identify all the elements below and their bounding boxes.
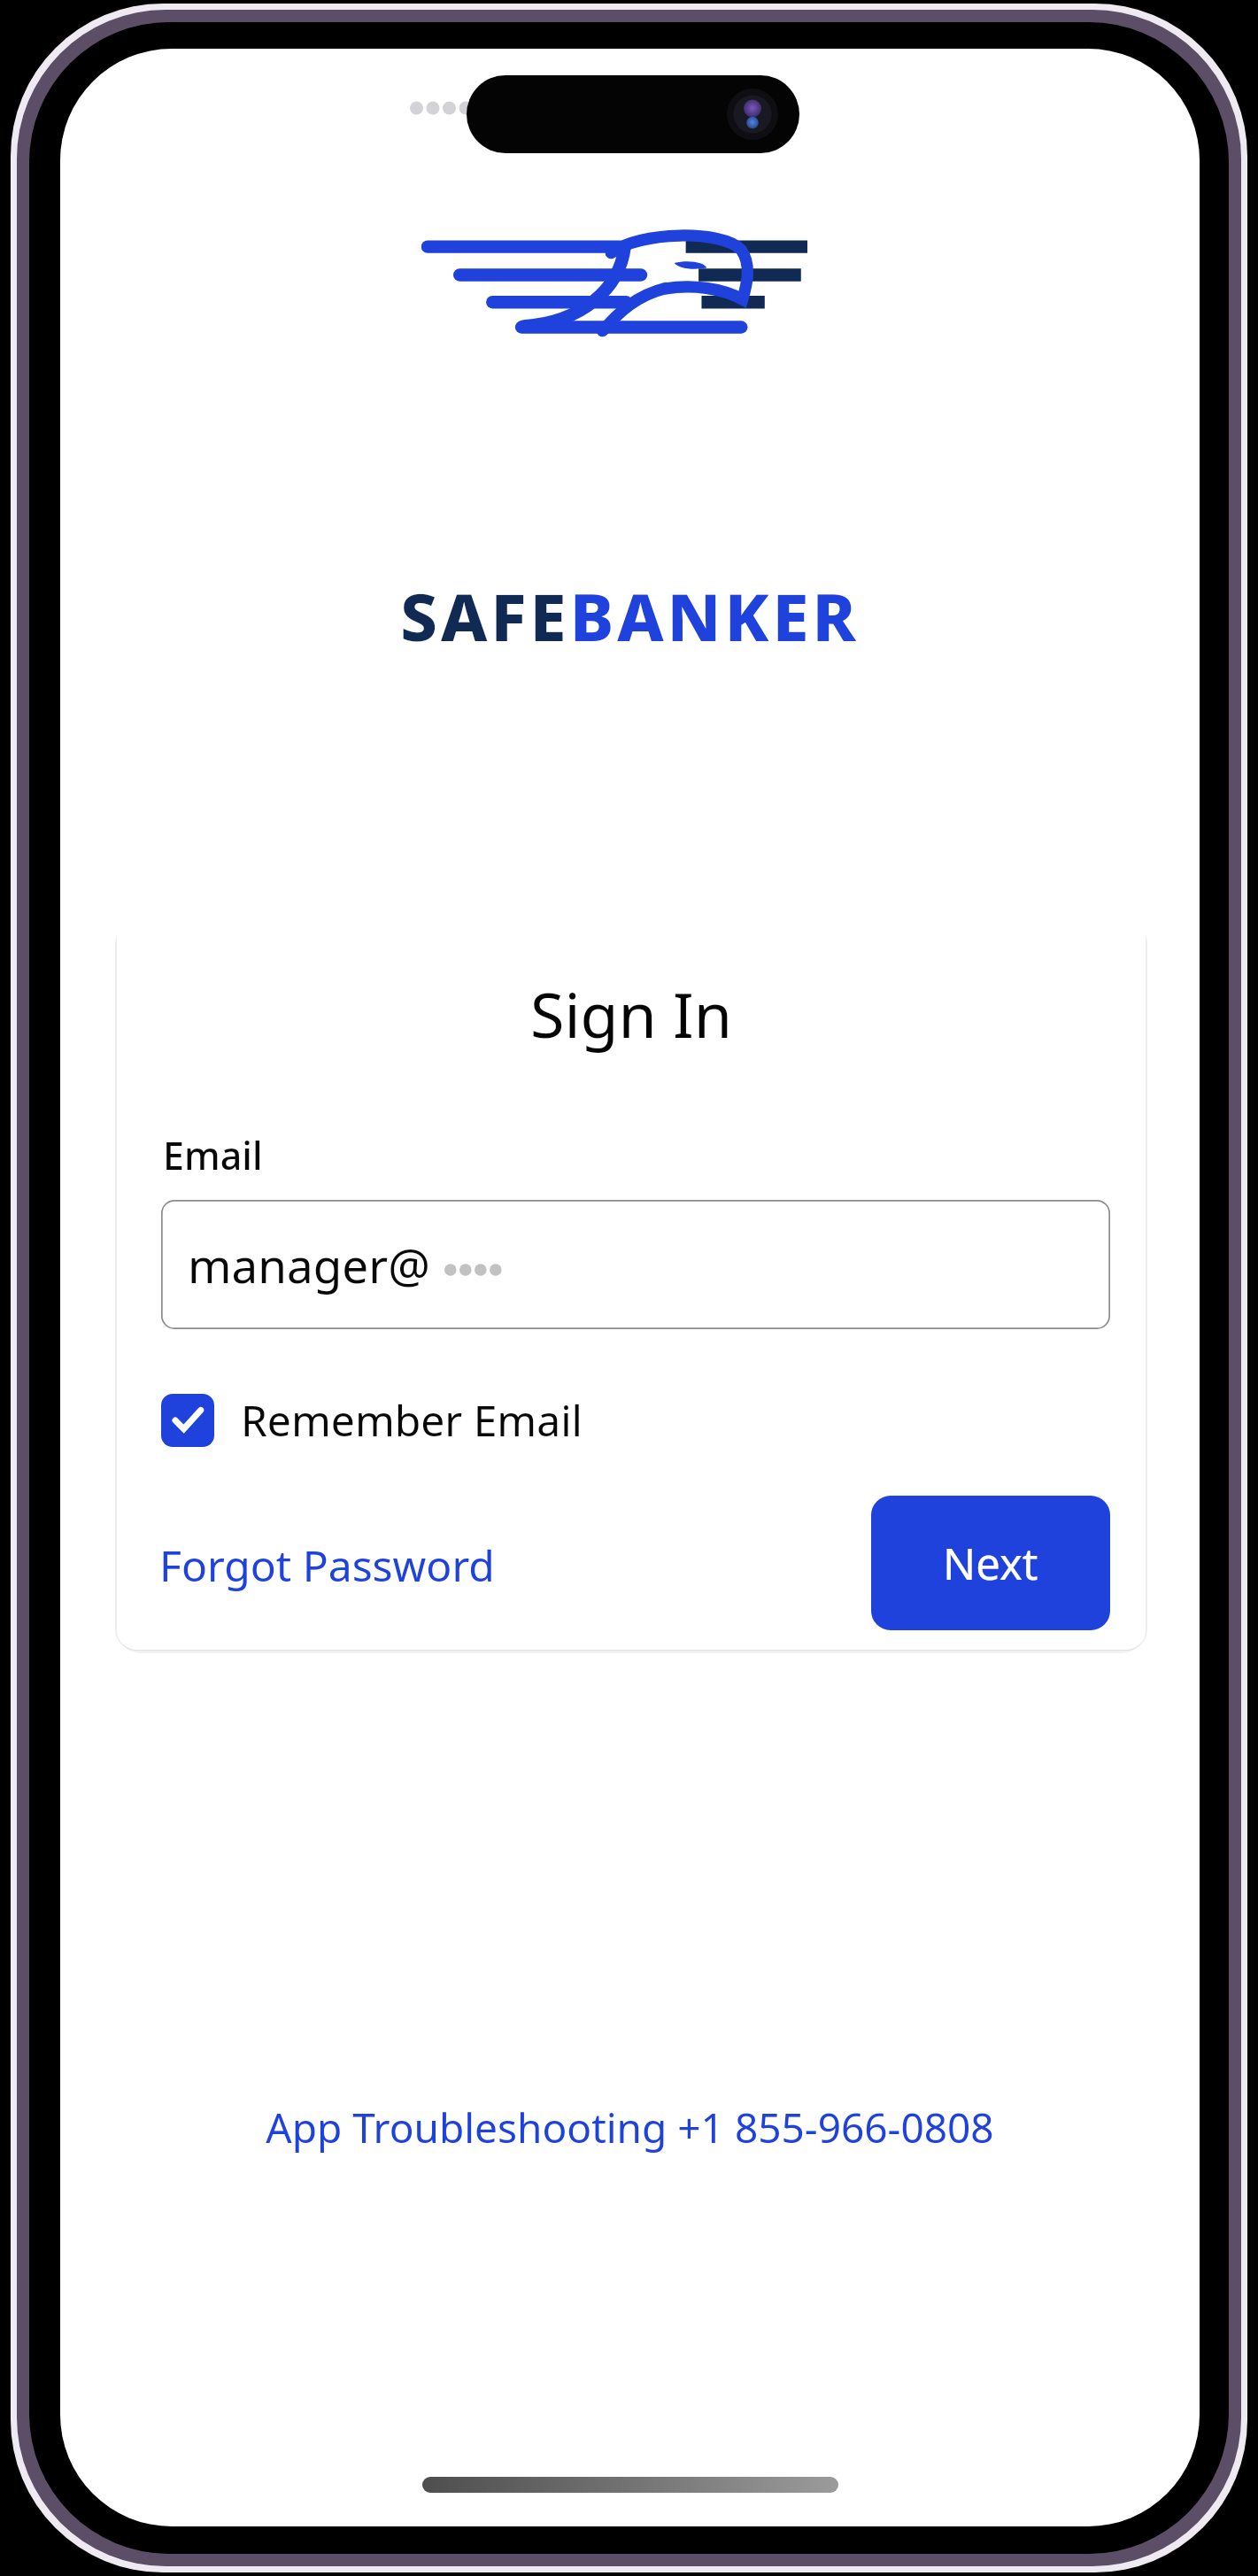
staticText: App Troubleshooting +1 855-966-0808 [266, 2100, 994, 2155]
button[interactable]: manager@ [161, 1200, 1110, 1329]
staticText: Sign In [117, 971, 1146, 1056]
staticText: Email [163, 1129, 263, 1181]
button[interactable]: App Troubleshooting +1 855-966-0808 [60, 2100, 1200, 2155]
other: SafeBanker logo [381, 228, 807, 333]
staticText: Remember Email [241, 1391, 583, 1449]
staticText: Forgot Password [159, 1536, 495, 1594]
button[interactable]: Forgot Password [158, 1529, 497, 1601]
staticText: SAFEBANKER [60, 571, 1200, 661]
button[interactable]: Next [871, 1496, 1110, 1630]
button[interactable]: Remember Email [161, 1391, 583, 1449]
staticText: Next [943, 1534, 1038, 1593]
staticText: manager@ [188, 1233, 430, 1296]
